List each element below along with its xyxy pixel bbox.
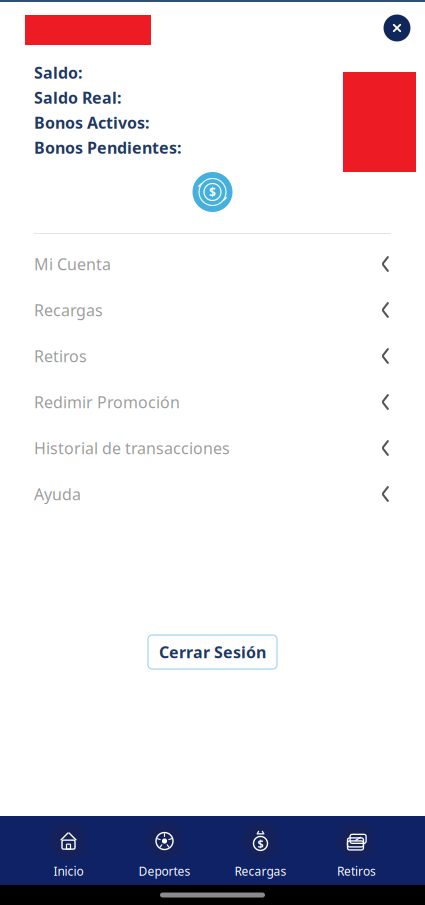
button[interactable]: Ayuda [25, 471, 400, 517]
button[interactable]: Close [377, 8, 417, 48]
staticText: Redimir Promoción [34, 391, 180, 413]
button[interactable]: Cerrar Sesión [148, 635, 277, 669]
staticText: $ [209, 184, 216, 200]
button[interactable]: Inicio [20, 820, 116, 880]
staticText: Saldo Real: [34, 87, 121, 108]
staticText: Historial de transacciones [34, 437, 230, 459]
staticText: Inicio [53, 863, 83, 879]
button[interactable]: Retiros [25, 333, 400, 379]
staticText: Deportes [138, 863, 190, 879]
staticText: Bonos Activos: [34, 112, 149, 133]
button[interactable]: Historial de transacciones [25, 425, 400, 471]
staticText: Cerrar Sesión [159, 641, 266, 663]
staticText: Mi Cuenta [34, 253, 111, 275]
staticText: Retiros [34, 345, 87, 367]
button[interactable]: Mi Cuenta [25, 241, 400, 287]
staticText: Ayuda [34, 483, 81, 505]
staticText: Retiros [337, 863, 376, 879]
button[interactable]: $ [212, 820, 308, 880]
staticText: $ [257, 836, 263, 850]
button[interactable]: Recargas [25, 287, 400, 333]
button[interactable]: Deportes [116, 820, 212, 880]
staticText: Saldo: [34, 62, 82, 83]
staticText: Bonos Pendientes: [34, 137, 181, 158]
button[interactable]: Redimir Promoción [25, 379, 400, 425]
staticText: Recargas [234, 863, 286, 879]
staticText: Recargas [34, 299, 103, 321]
button[interactable]: Retiros [308, 820, 404, 880]
